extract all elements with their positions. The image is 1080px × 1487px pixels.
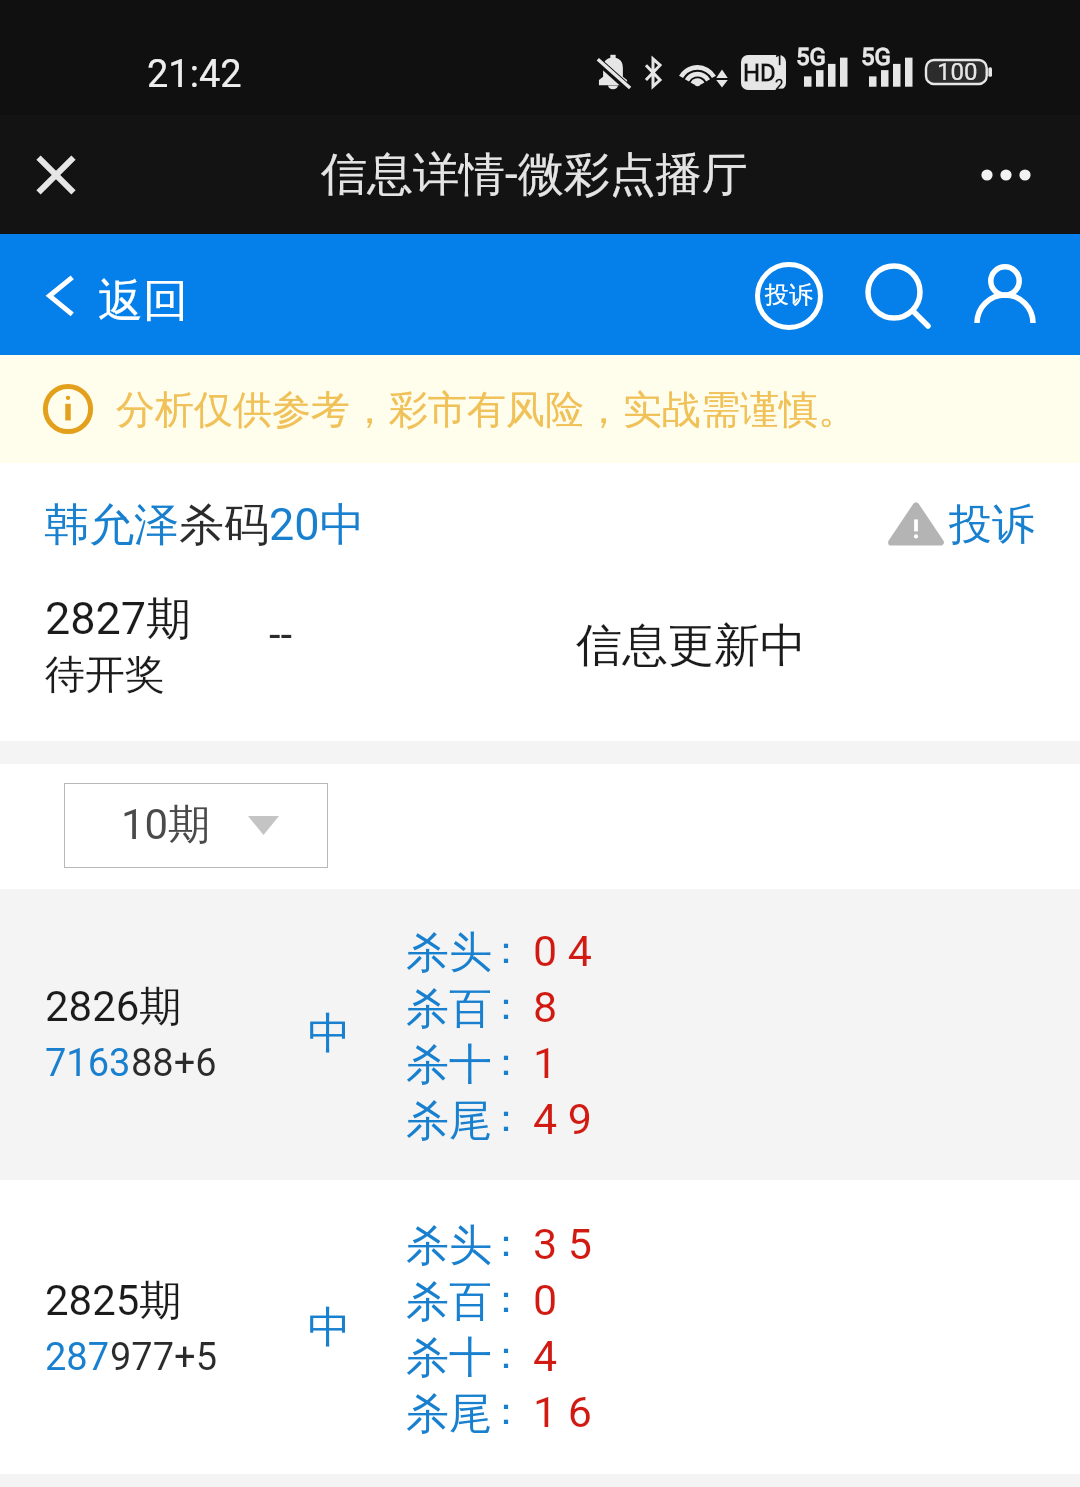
staticText: 2827期 — [45, 591, 192, 648]
staticText: 中 — [308, 1007, 351, 1061]
staticText: ： — [487, 1219, 525, 1267]
staticText: ： — [487, 982, 525, 1030]
button[interactable]: Search — [858, 258, 932, 332]
staticText: ： — [487, 1275, 525, 1323]
staticText: 杀头 — [406, 1219, 492, 1273]
staticText: 977+5 — [110, 1335, 217, 1380]
staticText: 1 — [533, 1038, 558, 1088]
staticText: 1 — [775, 51, 784, 69]
staticText: ： — [487, 1094, 525, 1142]
staticText: 287 — [45, 1335, 110, 1380]
staticText: 8 — [533, 982, 558, 1032]
button[interactable]: 韩允泽 — [44, 497, 365, 554]
staticText: 中 — [308, 1301, 351, 1355]
staticText: 2 — [775, 76, 784, 94]
staticText: 杀百 — [406, 982, 492, 1036]
staticText: HD — [743, 59, 776, 87]
staticText: 杀十 — [406, 1038, 492, 1092]
staticText: 杀尾 — [406, 1094, 492, 1148]
staticText: -- — [269, 610, 293, 659]
staticText: 0 — [533, 1275, 558, 1325]
staticText: 7163 — [45, 1041, 131, 1086]
staticText: 韩允泽 — [44, 497, 179, 554]
button[interactable]: Profile — [975, 262, 1037, 324]
staticText: 4 9 — [533, 1094, 592, 1144]
staticText: 杀头 — [406, 926, 492, 980]
staticText: ： — [487, 1387, 525, 1435]
staticText: 5G — [861, 43, 891, 71]
staticText: 10期 — [121, 799, 211, 852]
staticText: 待开奖 — [45, 649, 165, 699]
button[interactable]: 投诉 — [753, 260, 825, 332]
staticText: 杀码 — [179, 497, 269, 554]
staticText: ： — [487, 1038, 525, 1086]
staticText: 21:42 — [147, 52, 242, 97]
staticText: ： — [487, 1331, 525, 1379]
staticText: 信息详情-微彩点播厅 — [321, 146, 748, 204]
staticText: ： — [487, 926, 525, 974]
button[interactable]: 10期 — [64, 783, 328, 868]
staticText: 投诉 — [949, 498, 1035, 552]
staticText: 信息更新中 — [576, 617, 806, 675]
staticText: 88+6 — [131, 1041, 217, 1086]
staticText: 4 — [533, 1331, 558, 1381]
staticText: 0 4 — [533, 926, 592, 976]
staticText: 3 5 — [533, 1219, 592, 1269]
staticText: 20中 — [269, 497, 365, 554]
staticText: 2826期 — [45, 981, 182, 1034]
staticText: 2825期 — [45, 1275, 182, 1328]
staticText: 杀百 — [406, 1275, 492, 1329]
button[interactable]: More options — [966, 135, 1046, 215]
staticText: 杀尾 — [406, 1387, 492, 1441]
button[interactable]: 返回 — [42, 266, 188, 323]
staticText: 1 6 — [533, 1387, 592, 1437]
staticText: 杀十 — [406, 1331, 492, 1385]
button[interactable]: 投诉 — [888, 497, 1035, 551]
button[interactable]: 2826期 — [0, 889, 1080, 1180]
staticText: 投诉 — [765, 280, 813, 310]
staticText: 5G — [796, 43, 826, 71]
button[interactable]: Close — [18, 137, 94, 213]
button[interactable]: 2825期 — [0, 1180, 1080, 1474]
staticText: 分析仅供参考，彩市有风险，实战需谨慎。 — [116, 385, 857, 434]
staticText: 100 — [937, 58, 978, 86]
staticText: 返回 — [98, 273, 188, 330]
